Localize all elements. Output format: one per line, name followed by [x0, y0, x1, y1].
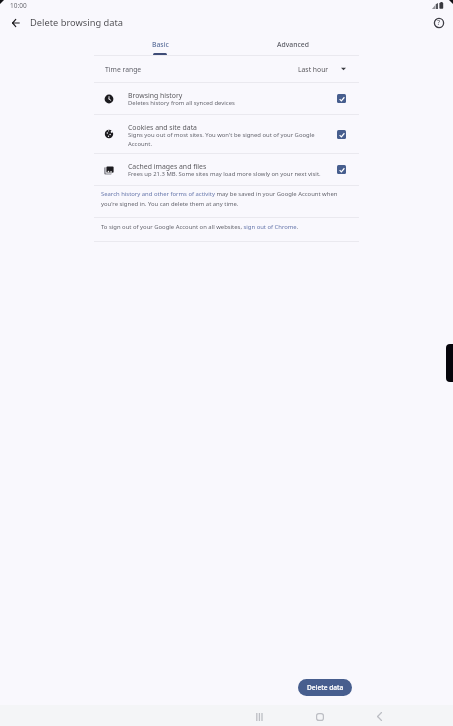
staticText: 10:00	[10, 1, 27, 10]
button[interactable]: Toggle Cached images and files	[337, 165, 346, 174]
staticText: Last hour	[298, 65, 329, 74]
button[interactable]: Back	[6, 13, 25, 32]
button[interactable]: Advanced	[226, 34, 359, 55]
staticText: To sign out of your Google Account on al…	[101, 223, 340, 231]
staticText: Basic	[152, 40, 169, 49]
button[interactable]: Search history and other forms of activi…	[94, 186, 359, 217]
button[interactable]: Back	[369, 706, 390, 726]
button[interactable]: Toggle Browsing history	[337, 94, 346, 103]
staticText: Time range	[105, 65, 142, 74]
staticText: Frees up 21.3 MB. Some sites may load mo…	[128, 170, 321, 178]
button[interactable]: Delete data	[298, 679, 352, 696]
staticText: Search history and other forms of activi…	[101, 190, 340, 208]
staticText: Browsing history	[128, 91, 183, 100]
button[interactable]: Basic	[94, 34, 226, 55]
staticText: Delete browsing data	[30, 16, 124, 29]
button[interactable]: Help	[429, 13, 448, 32]
staticText: Advanced	[277, 40, 309, 49]
button[interactable]: Time range	[94, 56, 359, 82]
button[interactable]: Home	[309, 706, 330, 726]
button[interactable]: Toggle Cookies and site data	[337, 130, 346, 139]
staticText: ?	[437, 18, 441, 28]
button[interactable]: Browsing history	[94, 83, 359, 114]
staticText: Deletes history from all synced devices	[128, 99, 235, 107]
staticText: Cookies and site data	[128, 123, 197, 132]
staticText: Delete data	[307, 683, 344, 692]
button[interactable]: Cached images and files	[94, 154, 359, 185]
button[interactable]: Recent apps	[249, 706, 270, 726]
staticText: Cached images and files	[128, 162, 207, 171]
staticText: Signs you out of most sites. You won't b…	[128, 131, 333, 147]
button[interactable]: To sign out of your Google Account on al…	[94, 218, 359, 241]
button[interactable]: Cookies and site data	[94, 115, 359, 153]
